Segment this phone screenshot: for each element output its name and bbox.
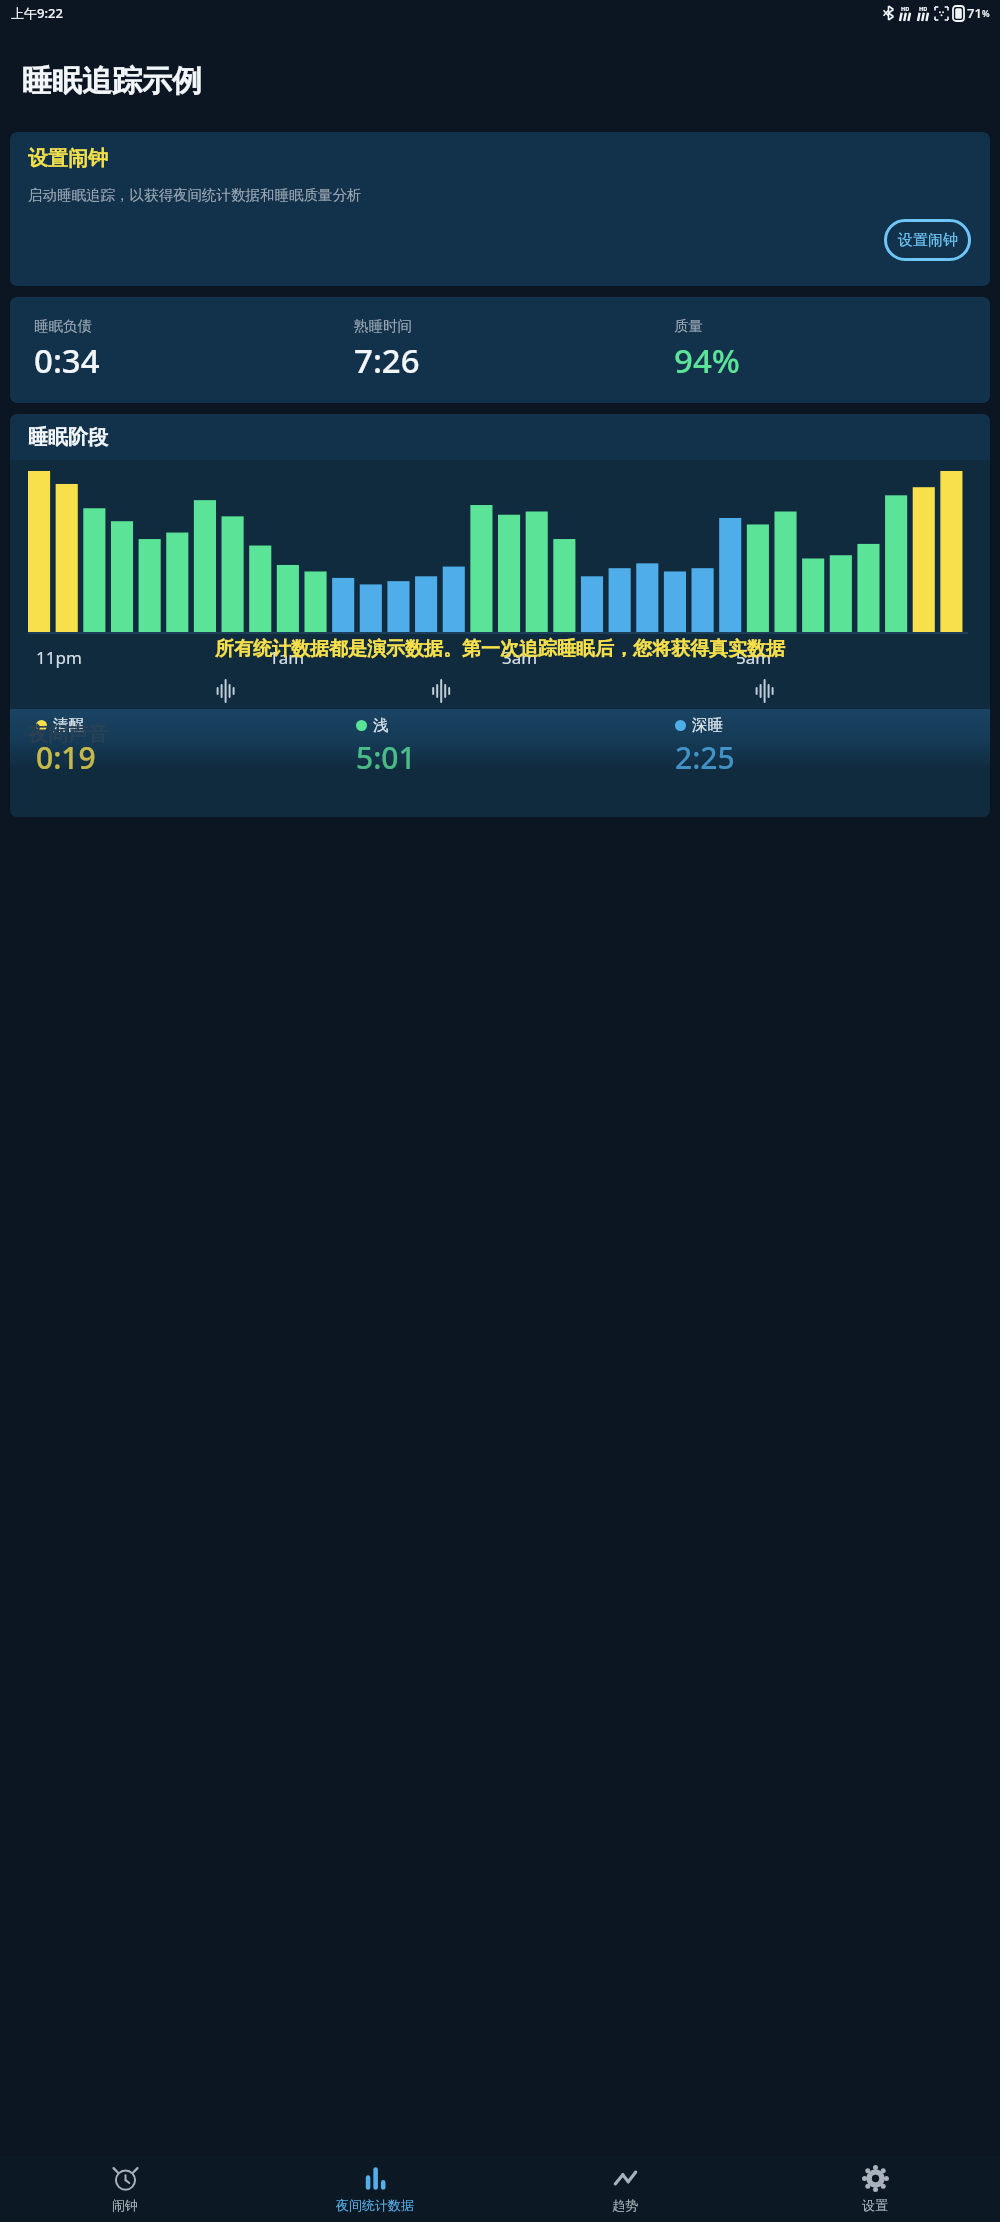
staticText: 浅: [373, 715, 389, 735]
staticText: 质量: [674, 317, 703, 335]
staticText: 夜间统计数据: [336, 2197, 414, 2213]
staticText: 熟睡时间: [354, 317, 412, 335]
staticText: 清醒: [53, 715, 84, 735]
staticText: 所有统计数据都是演示数据。第一次追踪睡眠后，您将获得真实数据: [215, 637, 785, 661]
staticText: 0:19: [36, 737, 96, 771]
button[interactable]: 设置闹钟: [883, 218, 972, 262]
button[interactable]: 设置: [750, 2156, 1000, 2222]
button[interactable]: 闹钟: [0, 2156, 250, 2222]
staticText: 94%: [674, 338, 740, 383]
staticText: 启动睡眠追踪，以获得夜间统计数据和睡眠质量分析: [28, 186, 362, 204]
staticText: 2:25: [675, 737, 735, 771]
staticText: 5:01: [356, 737, 416, 771]
staticText: %: [982, 7, 990, 19]
button[interactable]: 趋势: [500, 2156, 750, 2222]
staticText: 1am: [269, 646, 305, 669]
staticText: 趋势: [612, 2197, 638, 2213]
staticText: 5am: [736, 646, 772, 669]
staticText: 夜间声音: [28, 722, 108, 747]
staticText: 闹钟: [112, 2197, 138, 2213]
staticText: 11pm: [36, 646, 82, 669]
staticText: 睡眠负债: [34, 317, 92, 335]
staticText: 设置闹钟: [898, 231, 958, 250]
staticText: 7:26: [354, 338, 420, 383]
staticText: 设置: [862, 2197, 888, 2213]
staticText: 睡眠阶段: [28, 425, 108, 450]
staticText: 3am: [502, 646, 538, 669]
staticText: 0:34: [34, 338, 100, 383]
staticText: 71: [967, 4, 982, 22]
staticText: 上午9:22: [11, 4, 63, 22]
button[interactable]: 夜间统计数据: [250, 2156, 500, 2222]
staticText: HD: [919, 5, 928, 12]
staticText: 深睡: [692, 715, 723, 735]
staticText: 设置闹钟: [28, 146, 108, 171]
staticText: HD: [901, 5, 910, 12]
staticText: 睡眠追踪示例: [22, 62, 202, 100]
